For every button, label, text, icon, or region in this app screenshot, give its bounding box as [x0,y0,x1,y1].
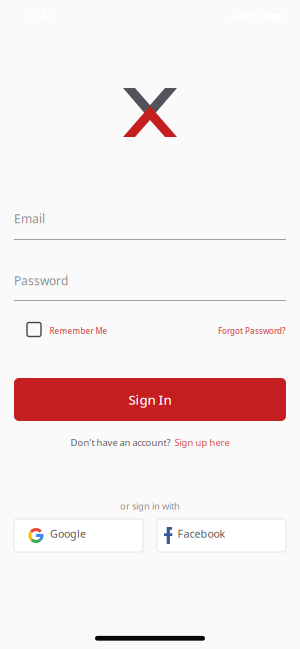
staticText: Password [14,272,68,288]
button[interactable]: Facebook [157,519,286,552]
staticText: or sign in with [120,500,180,512]
staticText: Sign up here [174,436,229,449]
staticText: Facebook [177,526,225,541]
staticText: Don’t have an account? [70,436,170,449]
staticText: Sign In [128,391,171,408]
button[interactable]: Forgot Password? [218,324,286,335]
staticText: Google [50,526,86,541]
button[interactable]: Sign up here [174,436,229,449]
staticText: Remember Me [49,326,107,336]
button[interactable]: Sign In [14,378,286,421]
staticText: Forgot Password? [218,326,286,336]
button[interactable]: Remember Me [27,322,107,336]
button[interactable]: Google [14,519,143,552]
staticText: Email [14,210,45,226]
